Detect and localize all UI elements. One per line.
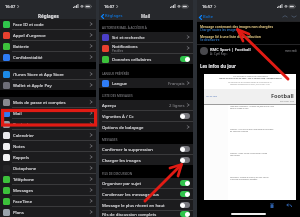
staticText: Appel d'urgence — [13, 32, 46, 38]
button[interactable]: Batterie — [0, 41, 96, 51]
button[interactable]: Mots de passe et comptes — [0, 97, 96, 107]
staticText: veut revenir — [230, 154, 241, 156]
staticText: Plans — [13, 209, 24, 215]
button[interactable]: Reply — [284, 201, 293, 210]
button[interactable]: Aperçu — [99, 100, 193, 110]
button[interactable]: Charger les images — [99, 155, 193, 165]
button[interactable]: Previous message — [282, 14, 288, 19]
button[interactable]: Dictaphone — [0, 163, 96, 173]
staticText: Condenser les messages lus — [102, 191, 159, 197]
staticText: LISTE DES MESSAGES — [102, 94, 133, 98]
button[interactable]: Mercato : l'ailier formé à Manchester Un… — [204, 152, 296, 176]
button[interactable]: Toggle — [180, 211, 190, 217]
button[interactable]: Wallet et Apple Pay — [0, 80, 96, 90]
button[interactable]: FaceTime — [0, 196, 96, 206]
staticText: Siri et recherche — [112, 34, 145, 40]
staticText: Fils de discussion complets — [102, 211, 157, 217]
button[interactable]: Toggle — [180, 56, 190, 62]
button[interactable]: Toggle — [180, 202, 190, 208]
staticText: Wallet et Apple Pay — [13, 82, 52, 88]
staticText: MESSAGES — [102, 138, 118, 142]
staticText: cliquez ici pour le lire en ligne · voir… — [219, 77, 282, 80]
button[interactable]: Notes — [0, 141, 96, 151]
button[interactable]: Calendrier — [0, 130, 96, 140]
staticText: 2 lignes — [169, 102, 185, 108]
button[interactable]: Messages — [0, 185, 96, 195]
button[interactable]: Siri et recherche — [99, 32, 193, 42]
staticText: RMC Sport | Football — [210, 47, 251, 52]
button[interactable]: Langue — [99, 78, 193, 88]
staticText: Contacts — [13, 121, 31, 127]
staticText: AUTORISER MAIL À ACCÉDER À — [102, 26, 147, 30]
staticText: Ligue des champions : la colère de Jean-… — [230, 105, 275, 107]
staticText: Messages — [13, 187, 33, 193]
button[interactable]: Rappels — [0, 152, 96, 162]
staticText: FILS DE DISCUSSION — [102, 172, 132, 176]
button[interactable]: Confirmer la suppression — [99, 144, 193, 154]
button[interactable]: Données cellulaires — [99, 54, 193, 64]
button[interactable]: Next message — [291, 14, 297, 19]
button[interactable]: Toggle — [180, 113, 190, 119]
staticText: Options de balayage — [102, 124, 144, 130]
staticText: Boîte — [203, 14, 213, 20]
button[interactable]: Message contenant des images non chargée… — [197, 22, 300, 33]
staticText: RMC SPORT · INFO — [280, 100, 294, 102]
button[interactable]: Options de balayage — [99, 122, 193, 132]
button[interactable]: Mercato : l'OM suit de près l'internatio… — [204, 128, 296, 152]
staticText: après le tirage au sort — [230, 107, 249, 109]
staticText: Football — [271, 92, 294, 100]
staticText: Mail — [141, 13, 151, 19]
button[interactable]: iTunes Store et App Store — [0, 69, 96, 79]
staticText: 16:57 — [202, 4, 213, 9]
button[interactable]: Toggle — [180, 191, 190, 197]
button[interactable]: Contacts — [0, 119, 96, 129]
button[interactable]: Organiser par sujet — [99, 178, 193, 188]
button[interactable]: Notifications — [99, 43, 193, 53]
button[interactable]: Toggle — [180, 157, 190, 163]
staticText: Charger les images — [102, 157, 141, 163]
button[interactable]: Ligue des champions : la colère de Jean-… — [204, 105, 296, 128]
button[interactable]: Toggle — [180, 180, 190, 186]
staticText: iTunes Store et App Store — [13, 71, 64, 77]
staticText: FaceTime — [13, 198, 33, 204]
staticText: À : Cyril Roy › — [210, 52, 228, 56]
button[interactable]: Mail — [0, 108, 96, 118]
button[interactable]: Boîte — [199, 14, 215, 20]
button[interactable]: Vignettes À / Cc — [99, 111, 193, 121]
button[interactable]: Toggle — [180, 146, 190, 152]
staticText: Rappels — [13, 154, 29, 160]
button[interactable]: Fils de discussion complets — [99, 211, 193, 217]
staticText: Confirmer la suppression — [102, 146, 153, 152]
staticText: Message le plus récent en haut — [102, 202, 165, 208]
staticText: Calendrier — [13, 132, 35, 138]
staticText: Si ce message ne s'affiche pas correctem… — [233, 75, 268, 77]
staticText: Les infos du jour — [200, 63, 237, 69]
staticText: Charger toutes les images — [200, 28, 237, 32]
staticText: Dictaphone — [13, 165, 37, 171]
button[interactable]: Formation : Equipe de France, les trois … — [204, 176, 296, 200]
staticText: Voir en ligne — [206, 95, 218, 98]
staticText: 16:07 — [5, 4, 16, 9]
button[interactable]: Face ID et code — [0, 19, 96, 29]
button[interactable]: Delete — [267, 201, 276, 210]
button[interactable]: Condenser les messages lus — [99, 189, 193, 199]
staticText: LANGUE PRÉFÉRÉE — [102, 72, 130, 76]
staticText: Réglages — [38, 13, 59, 19]
staticText: du Sporting Lisbonne — [230, 130, 249, 132]
button[interactable]: Confidentialité — [0, 52, 96, 62]
button[interactable]: Message lié à une liste de distribution — [197, 33, 300, 44]
staticText: Formation : Equipe de France, les trois … — [230, 176, 269, 178]
button[interactable]: Réglages — [101, 13, 125, 19]
staticText: Message lié à une liste de distribution — [200, 34, 261, 38]
button[interactable]: Téléphone — [0, 174, 96, 184]
button[interactable]: Appel d'urgence — [0, 30, 96, 40]
staticText: Mots de passe et comptes — [13, 99, 66, 105]
staticText: Face ID et code — [13, 21, 44, 27]
button[interactable]: Plans — [0, 207, 96, 217]
staticText: Batterie — [13, 43, 30, 49]
staticText: Réglages — [105, 13, 123, 19]
staticText: Notifications — [112, 43, 138, 49]
staticText: newsletter quotidienne RMC Sport, tous l… — [230, 83, 271, 85]
staticText: Aperçu — [102, 102, 117, 108]
button[interactable]: Message le plus récent en haut — [99, 200, 193, 210]
